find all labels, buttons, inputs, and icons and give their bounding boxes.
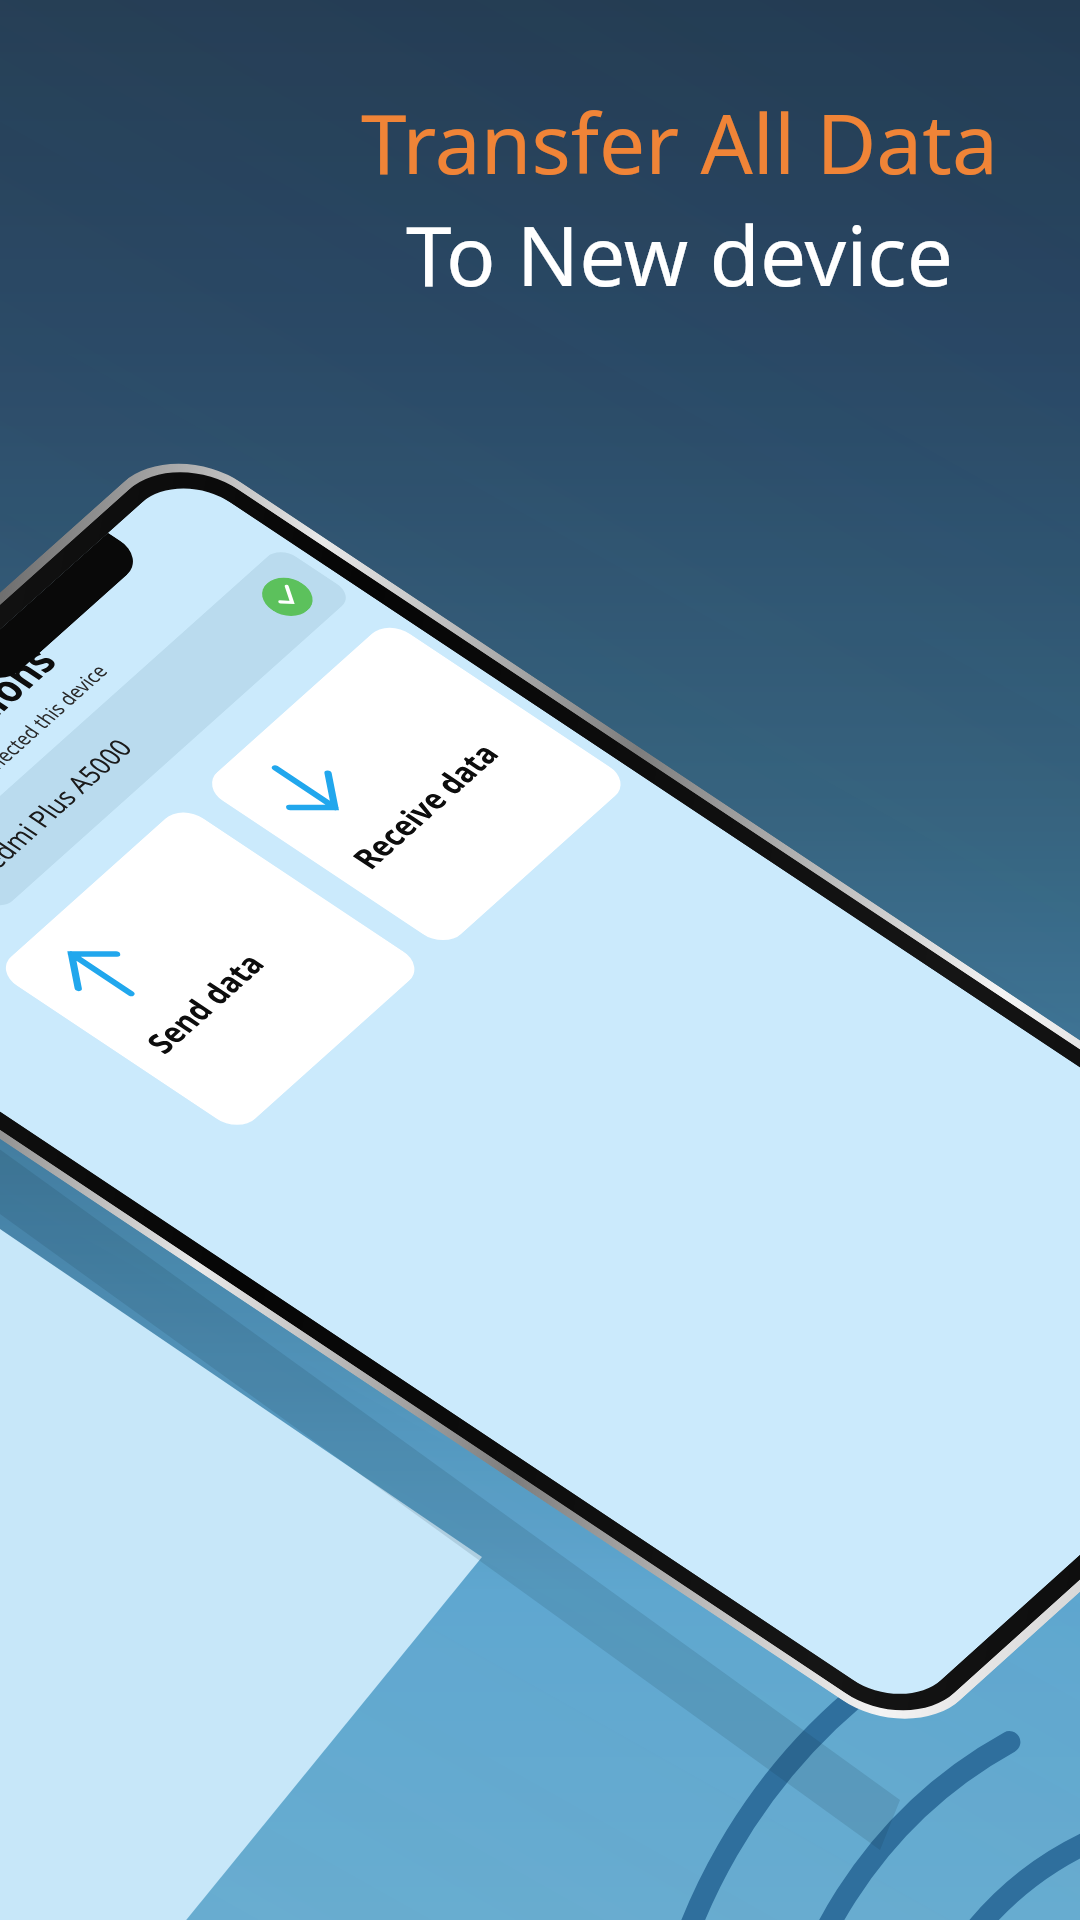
staticText: Transfer All Data	[361, 86, 998, 198]
button[interactable]: Send data	[0, 804, 425, 1133]
staticText: Send data	[135, 945, 274, 1061]
staticText: Connections	[0, 636, 69, 820]
staticText: Receive data	[341, 735, 508, 876]
button[interactable]: Redmi Plus A5000	[0, 546, 354, 912]
staticText: Devices connected this device	[0, 659, 114, 839]
staticText: Redmi Plus A5000	[0, 732, 141, 885]
button[interactable]: Receive data	[201, 619, 632, 949]
staticText: To New device	[406, 198, 953, 310]
